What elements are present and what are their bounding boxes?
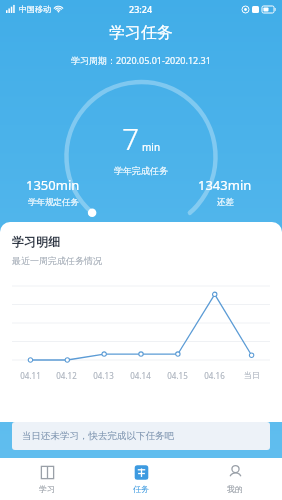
staticText: 7 bbox=[122, 118, 140, 159]
staticText: 学习周期：2020.05.01-2020.12.31 bbox=[71, 54, 211, 66]
staticText: 学年规定任务 bbox=[28, 197, 79, 208]
staticText: 最近一周完成任务情况 bbox=[12, 255, 102, 266]
staticText: 学习任务 bbox=[109, 23, 173, 43]
staticText: 任务 bbox=[133, 484, 149, 494]
staticText: 04.14 bbox=[130, 370, 151, 381]
staticText: 04.11 bbox=[20, 370, 41, 381]
staticText: 我的 bbox=[227, 484, 243, 494]
staticText: 当日 bbox=[244, 370, 260, 380]
staticText: 还差 bbox=[217, 197, 234, 208]
staticText: 04.15 bbox=[167, 370, 188, 381]
button[interactable]: 我的 bbox=[188, 458, 282, 500]
button[interactable]: 当日还未学习，快去完成以下任务吧 bbox=[12, 422, 270, 450]
staticText: 学习明细 bbox=[12, 234, 60, 249]
staticText: 1350min bbox=[26, 176, 80, 194]
button[interactable]: 学习 bbox=[0, 458, 94, 500]
staticText: min bbox=[142, 140, 161, 154]
staticText: 04.13 bbox=[93, 370, 114, 381]
staticText: 中国移动 bbox=[19, 4, 51, 14]
staticText: 23:24 bbox=[129, 3, 153, 15]
staticText: 学习 bbox=[39, 484, 55, 494]
button[interactable]: 任务 bbox=[94, 458, 188, 500]
staticText: 1343min bbox=[198, 176, 252, 194]
staticText: 04.12 bbox=[56, 370, 77, 381]
staticText: 当日还未学习，快去完成以下任务吧 bbox=[22, 430, 174, 442]
staticText: 04.16 bbox=[204, 370, 225, 381]
staticText: 学年完成任务 bbox=[114, 165, 168, 176]
